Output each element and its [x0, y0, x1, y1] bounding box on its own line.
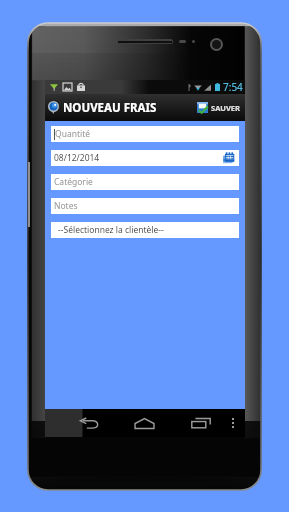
- button[interactable]: SAUVER: [197, 94, 245, 121]
- button[interactable]: Notes: [51, 198, 239, 214]
- button[interactable]: More options: [225, 414, 241, 432]
- button[interactable]: Home: [129, 412, 160, 434]
- staticText: Quantité: [55, 128, 91, 140]
- staticText: NOUVEAU FRAIS: [63, 100, 157, 116]
- button[interactable]: NOUVEAU FRAIS: [45, 94, 157, 121]
- button[interactable]: Catégorie: [51, 174, 239, 190]
- button[interactable]: --Sélectionnez la clientèle--: [51, 222, 239, 238]
- staticText: 08/12/2014: [54, 152, 100, 164]
- button[interactable]: Recent apps: [185, 412, 216, 434]
- staticText: SAUVER: [211, 103, 240, 113]
- button[interactable]: Back: [74, 412, 105, 434]
- button[interactable]: 08/12/2014: [51, 150, 239, 166]
- staticText: Catégorie: [54, 176, 93, 188]
- staticText: Notes: [54, 200, 78, 212]
- button[interactable]: Quantité: [51, 126, 239, 142]
- staticText: --Sélectionnez la clientèle--: [58, 224, 164, 236]
- staticText: 7:54: [223, 80, 243, 94]
